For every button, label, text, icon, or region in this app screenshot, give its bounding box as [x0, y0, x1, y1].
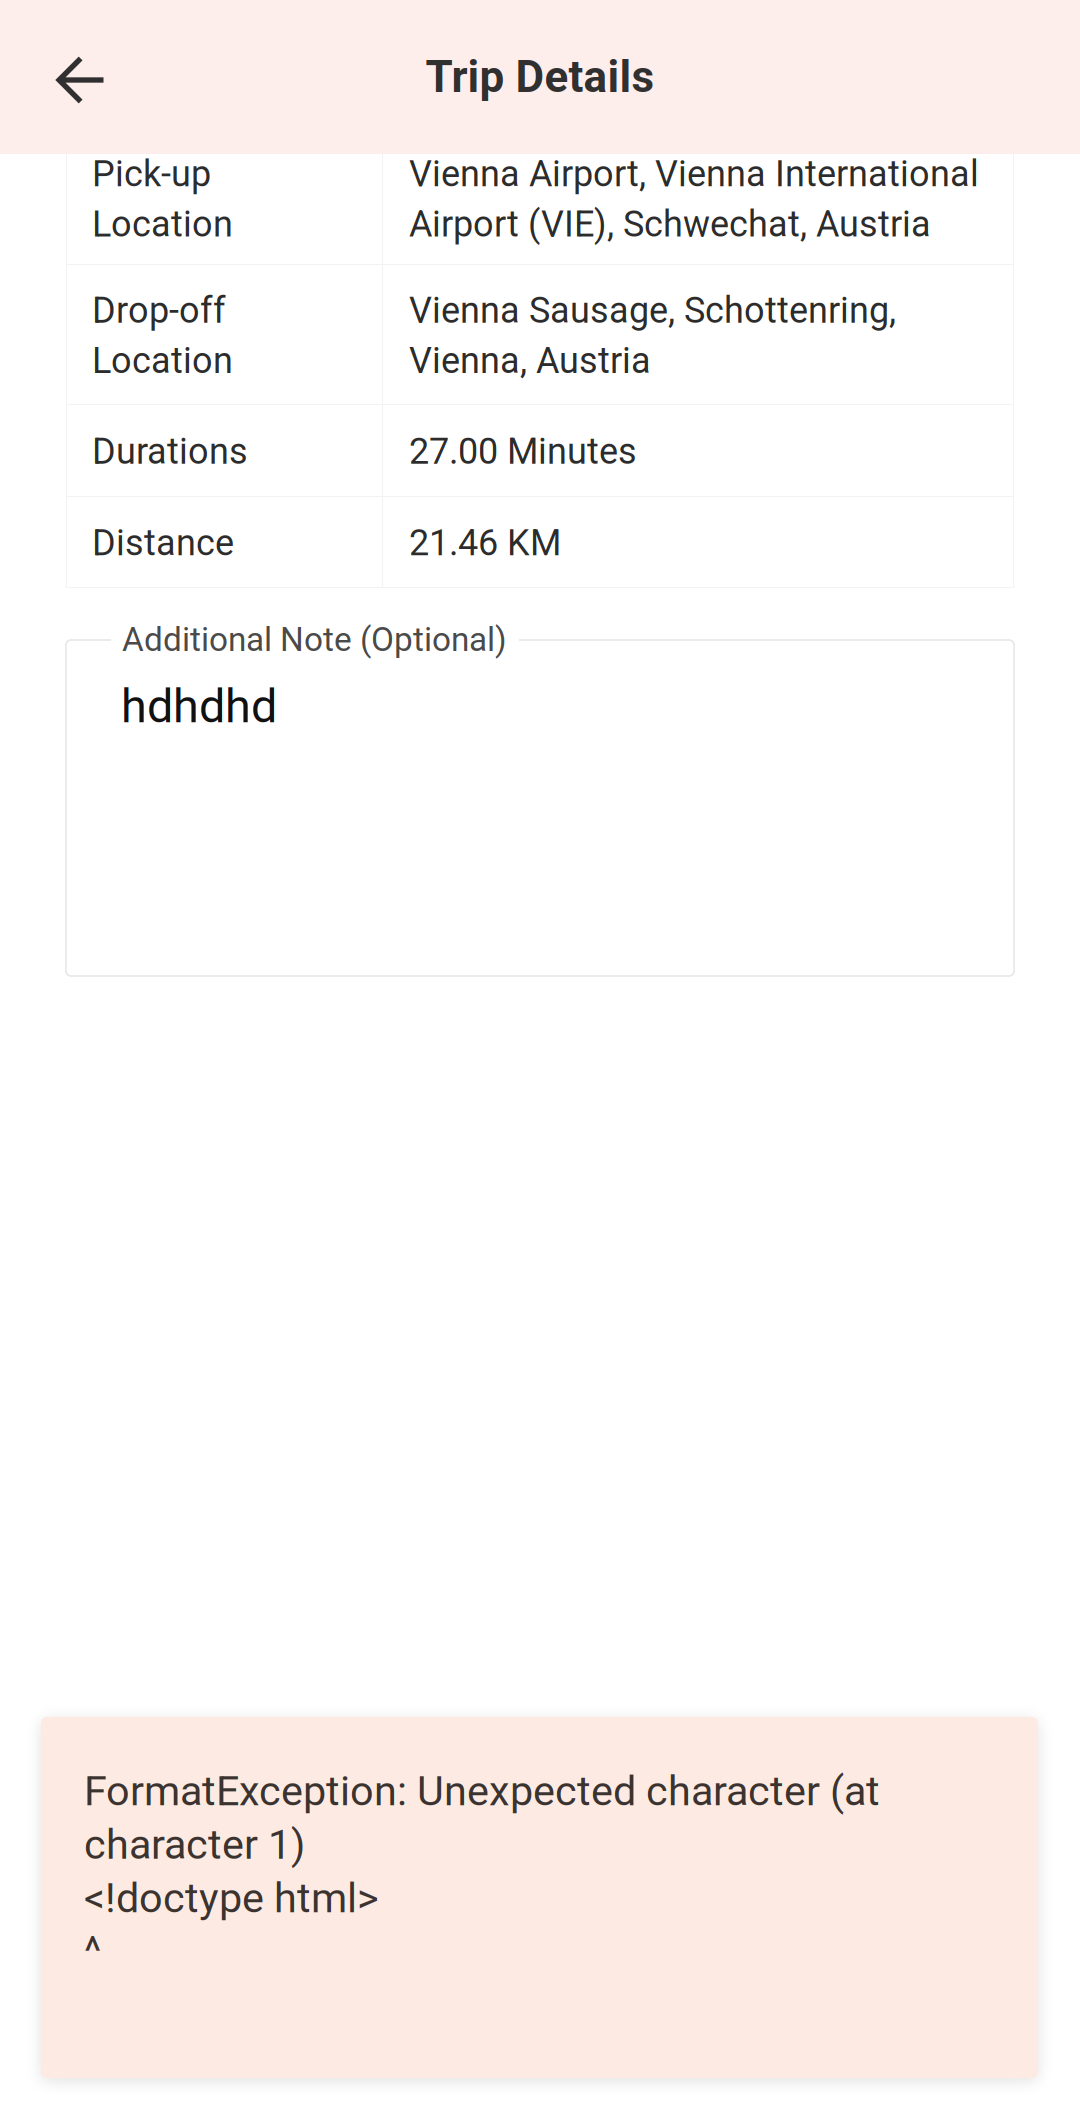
staticText: 27.00 Minutes	[409, 430, 637, 473]
staticText: Vienna Sausage, Schottenring, Vienna, Au…	[409, 289, 896, 382]
button[interactable]: Back	[0, 0, 157, 154]
staticText: FormatException: Unexpected character (a…	[84, 1767, 880, 1976]
staticText: Additional Note (Optional)	[122, 620, 507, 659]
staticText: 21.46 KM	[409, 522, 561, 564]
staticText: Distance	[92, 522, 234, 564]
staticText: hdhdhd	[121, 679, 277, 734]
staticText: Drop-off Location	[92, 289, 233, 382]
staticText: Vienna Airport, Vienna International Air…	[409, 153, 979, 245]
staticText: Durations	[92, 430, 248, 473]
button[interactable]: Additional Note (Optional)	[66, 640, 1014, 976]
staticText: Trip Details	[425, 51, 654, 103]
staticText: Pick-up Location	[92, 153, 233, 245]
